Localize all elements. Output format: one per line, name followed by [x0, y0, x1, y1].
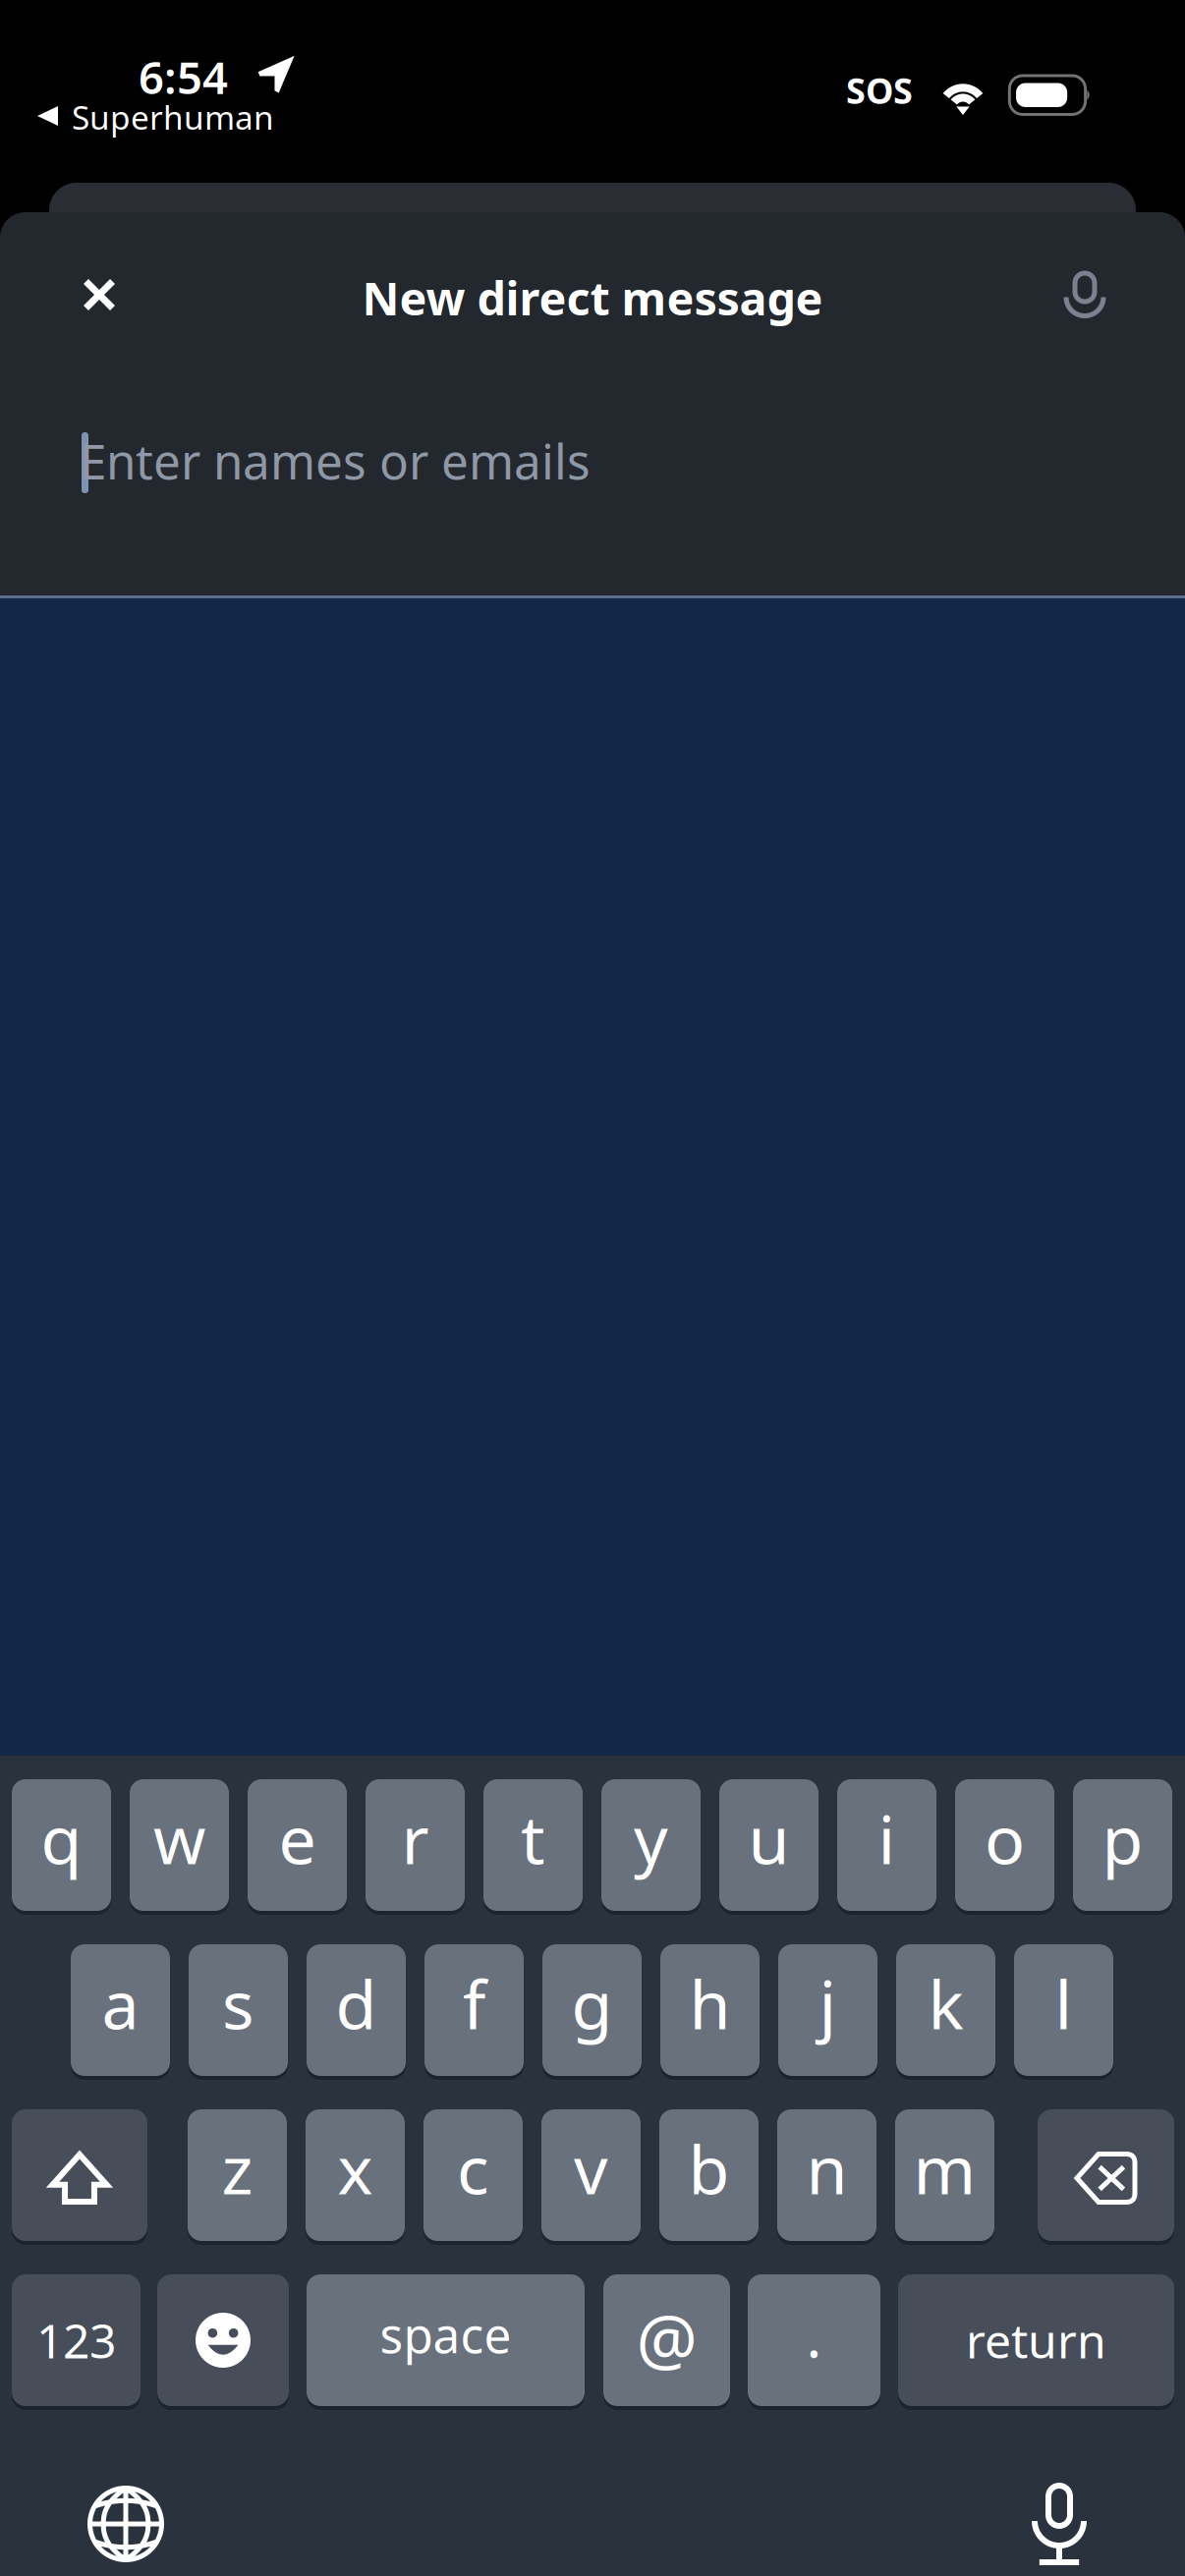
button[interactable]: Dictate: [1040, 250, 1130, 340]
button[interactable]: h: [660, 1944, 760, 2076]
staticText: Superhuman: [72, 95, 274, 139]
staticText: k: [928, 1959, 963, 2048]
staticText: t: [521, 1794, 545, 1882]
staticText: New direct message: [362, 267, 823, 328]
button[interactable]: j: [778, 1944, 877, 2076]
button[interactable]: k: [896, 1944, 995, 2076]
staticText: f: [463, 1959, 485, 2048]
button[interactable]: 123: [12, 2274, 141, 2406]
staticText: h: [689, 1959, 731, 2048]
button[interactable]: Dictate: [1000, 2465, 1118, 2576]
staticText: x: [338, 2124, 373, 2213]
button[interactable]: g: [542, 1944, 642, 2076]
button[interactable]: [12, 2109, 147, 2241]
staticText: s: [222, 1959, 254, 2048]
button[interactable]: o: [955, 1779, 1054, 1911]
button[interactable]: y: [601, 1779, 701, 1911]
staticText: d: [336, 1959, 377, 2048]
button[interactable]: space: [307, 2274, 585, 2406]
button[interactable]: Next keyboard: [67, 2465, 185, 2576]
button[interactable]: b: [659, 2109, 759, 2241]
staticText: m: [913, 2124, 976, 2213]
staticText: space: [380, 2302, 511, 2366]
button[interactable]: r: [366, 1779, 465, 1911]
staticText: c: [457, 2124, 489, 2213]
staticText: SOS: [846, 67, 913, 114]
staticText: p: [1102, 1794, 1143, 1882]
button[interactable]: m: [895, 2109, 994, 2241]
button[interactable]: n: [777, 2109, 876, 2241]
button[interactable]: [157, 2274, 289, 2406]
button[interactable]: z: [188, 2109, 287, 2241]
staticText: l: [1055, 1959, 1072, 2048]
staticText: return: [966, 2309, 1106, 2371]
staticText: g: [571, 1959, 613, 2048]
staticText: q: [41, 1794, 82, 1882]
staticText: e: [279, 1794, 316, 1882]
staticText: i: [878, 1794, 896, 1882]
button[interactable]: p: [1073, 1779, 1172, 1911]
staticText: j: [819, 1959, 837, 2048]
button[interactable]: u: [719, 1779, 818, 1911]
button[interactable]: q: [12, 1779, 111, 1911]
button[interactable]: a: [71, 1944, 170, 2076]
button[interactable]: x: [306, 2109, 405, 2241]
button[interactable]: f: [424, 1944, 524, 2076]
button[interactable]: w: [130, 1779, 229, 1911]
button[interactable]: Close: [50, 246, 148, 344]
staticText: 123: [36, 2309, 116, 2371]
staticText: @: [636, 2293, 697, 2384]
button[interactable]: c: [423, 2109, 523, 2241]
button[interactable]: return: [898, 2274, 1174, 2406]
staticText: .: [806, 2297, 822, 2374]
staticText: 6:54: [139, 47, 228, 106]
staticText: v: [574, 2124, 608, 2213]
staticText: u: [748, 1794, 790, 1882]
staticText: Enter names or emails: [80, 428, 591, 493]
button[interactable]: [1038, 2109, 1174, 2241]
staticText: o: [985, 1794, 1025, 1882]
button[interactable]: v: [541, 2109, 641, 2241]
button[interactable]: @: [603, 2274, 730, 2406]
button[interactable]: d: [307, 1944, 406, 2076]
button[interactable]: s: [189, 1944, 288, 2076]
staticText: y: [634, 1794, 668, 1882]
staticText: z: [222, 2124, 253, 2213]
staticText: r: [401, 1794, 429, 1882]
button[interactable]: t: [483, 1779, 583, 1911]
staticText: b: [688, 2124, 730, 2213]
button[interactable]: .: [748, 2274, 880, 2406]
button[interactable]: e: [248, 1779, 347, 1911]
button[interactable]: l: [1014, 1944, 1113, 2076]
staticText: n: [806, 2124, 847, 2213]
staticText: a: [102, 1959, 139, 2048]
button[interactable]: i: [837, 1779, 936, 1911]
staticText: w: [153, 1794, 205, 1882]
